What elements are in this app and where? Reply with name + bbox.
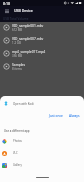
button[interactable]: Open with Kodi — [0, 96, 84, 111]
staticText: USB Device — [14, 8, 33, 13]
button[interactable]: mp4_sample017.mp4 — [0, 47, 84, 60]
staticText: mp4_sample017.mp4 — [12, 49, 46, 53]
staticText: Samples — [12, 62, 26, 66]
staticText: Always — [69, 114, 80, 118]
staticText: 356 MB — [12, 54, 23, 58]
staticText: VLC — [13, 151, 18, 155]
button[interactable]: Always — [67, 112, 82, 120]
staticText: 8:18 — [3, 1, 11, 6]
staticText: Just once — [49, 114, 63, 118]
staticText: Gallery — [13, 163, 22, 167]
button[interactable]: Just once — [47, 112, 65, 120]
staticText: Photos — [13, 139, 22, 143]
staticText: 1.2 GB — [12, 41, 21, 45]
button[interactable]: VLC — [0, 147, 84, 159]
staticText: VID_sample007.mkv — [12, 36, 44, 40]
staticText: Open with Kodi — [13, 102, 34, 106]
button[interactable]: Open navigation menu — [0, 6, 14, 15]
button[interactable]: VID_sample007.mkv — [0, 34, 84, 47]
staticText: USB Total Volume — [3, 17, 29, 21]
button[interactable]: Photos — [0, 135, 84, 147]
button[interactable]: Gallery — [0, 159, 84, 171]
staticText: VID_sample001.mkv — [12, 23, 44, 27]
button[interactable]: Samples — [0, 60, 84, 73]
staticText: 612 MB — [12, 28, 23, 32]
staticText: Use a different app — [4, 129, 30, 133]
staticText: 8 items — [12, 67, 22, 71]
button[interactable]: VID_sample001.mkv — [0, 21, 84, 34]
